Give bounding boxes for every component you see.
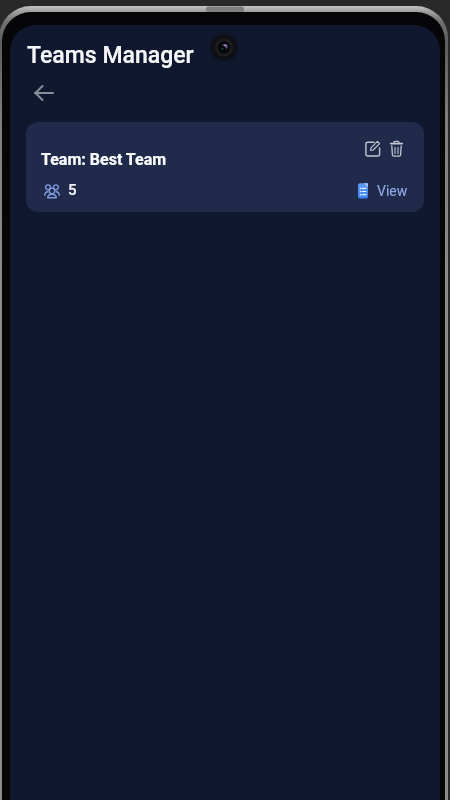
staticText: 5 [68, 181, 77, 199]
button[interactable] [390, 141, 403, 157]
button[interactable] [25, 77, 61, 109]
staticText: Teams Manager [27, 42, 194, 69]
button[interactable]: Team: Best Team [26, 122, 424, 212]
button[interactable]: View [358, 183, 408, 199]
staticText: View [377, 183, 408, 199]
staticText: Team: Best Team [41, 150, 167, 169]
button[interactable] [365, 141, 381, 157]
